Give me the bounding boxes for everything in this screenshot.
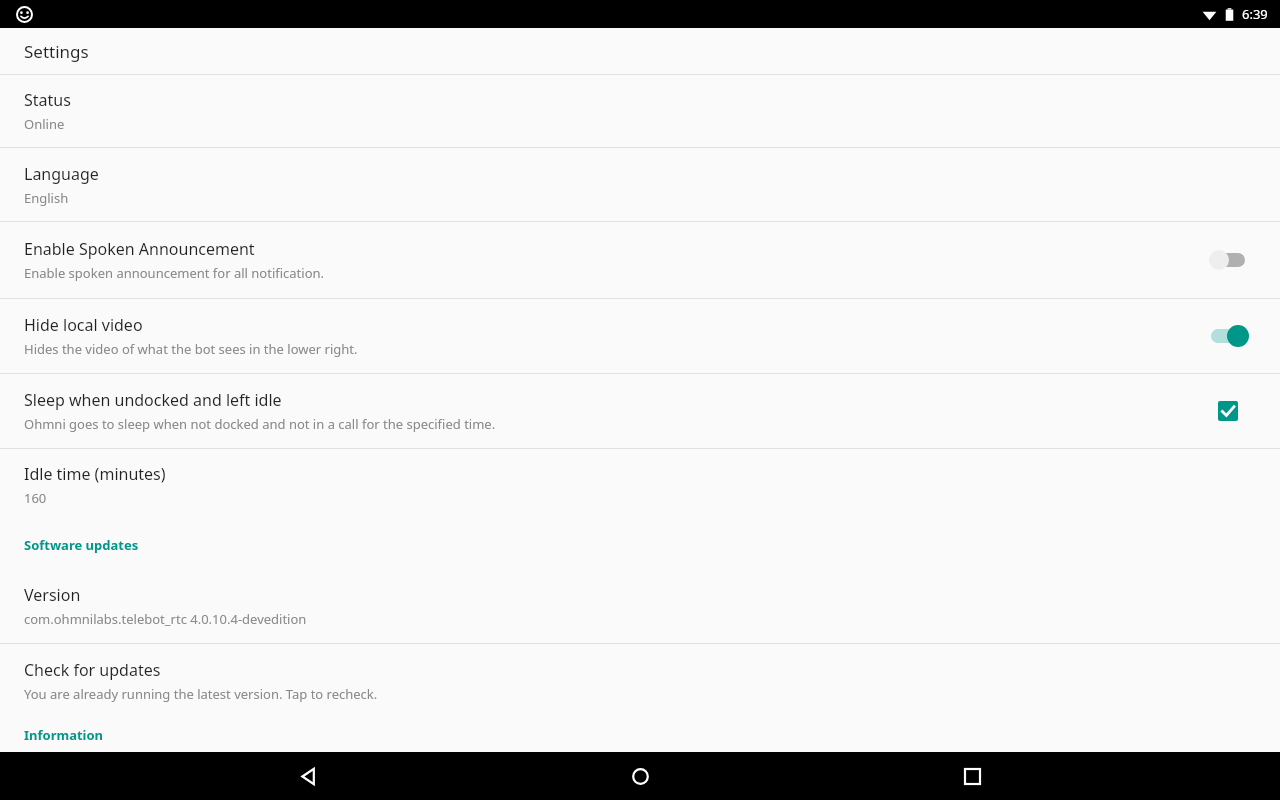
button[interactable]: Version (0, 569, 1280, 643)
staticText: Hides the video of what the bot sees in … (24, 340, 358, 358)
staticText: Ohmni goes to sleep when not docked and … (24, 415, 496, 433)
button[interactable]: Status (0, 75, 1280, 147)
staticText: You are already running the latest versi… (24, 685, 378, 703)
button[interactable]: Check for updates (0, 644, 1280, 718)
staticText: 6:39 (1242, 5, 1268, 23)
button[interactable]: Sleep when undocked checkbox, checked (1208, 391, 1248, 431)
staticText: Status (24, 89, 71, 111)
staticText: Sleep when undocked and left idle (24, 389, 282, 411)
button[interactable]: Recent apps (948, 752, 996, 800)
staticText: 160 (24, 489, 47, 507)
button[interactable]: Language (0, 148, 1280, 221)
button[interactable]: Idle time (minutes) (0, 449, 1280, 521)
staticText: Language (24, 163, 99, 185)
button[interactable]: Sleep when undocked and left idle (0, 374, 1280, 448)
staticText: Online (24, 115, 65, 133)
staticText: Version (24, 584, 81, 606)
button[interactable]: Enable Spoken Announcement toggle, off (1204, 244, 1252, 276)
button[interactable]: Back (284, 752, 332, 800)
button[interactable]: Hide local video (0, 299, 1280, 373)
staticText: Enable spoken announcement for all notif… (24, 264, 325, 282)
other: App status icon (10, 0, 38, 28)
staticText: Hide local video (24, 314, 143, 336)
staticText: Settings (24, 40, 89, 63)
staticText: Software updates (24, 536, 139, 554)
button[interactable]: Enable Spoken Announcement (0, 222, 1280, 298)
staticText: Check for updates (24, 659, 161, 681)
staticText: Enable Spoken Announcement (24, 238, 255, 260)
staticText: Idle time (minutes) (24, 463, 166, 485)
staticText: com.ohmnilabs.telebot_rtc 4.0.10.4-deved… (24, 610, 307, 628)
staticText: Information (24, 726, 104, 744)
staticText: English (24, 189, 69, 207)
button[interactable]: Home (616, 752, 664, 800)
button[interactable]: Hide local video toggle, on (1204, 320, 1252, 352)
